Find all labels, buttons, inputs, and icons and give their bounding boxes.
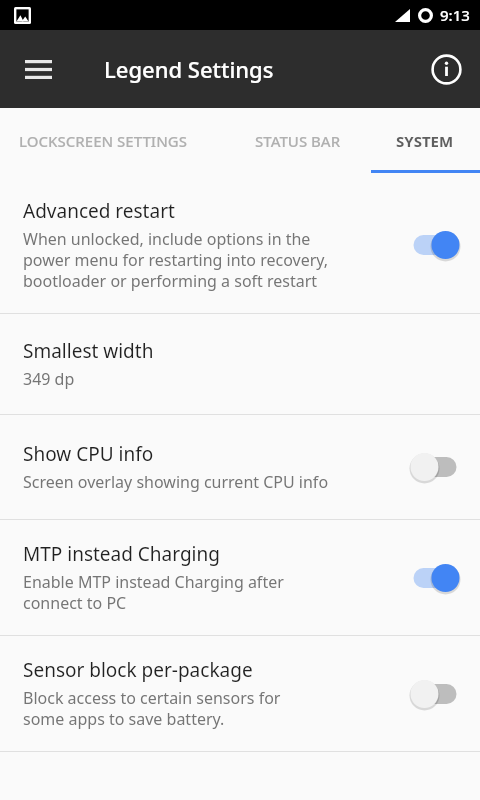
button[interactable]: Sensor block per-package	[404, 674, 466, 714]
staticText: Enable MTP instead Charging after connec…	[23, 571, 284, 614]
staticText: Screen overlay showing current CPU info	[23, 471, 329, 493]
button[interactable]: Advanced restart	[0, 176, 480, 313]
button[interactable]: Advanced restart	[404, 225, 466, 265]
staticText: Sensor block per-package	[23, 657, 253, 683]
staticText: Show CPU info	[23, 441, 154, 467]
staticText: LOCKSCREEN SETTINGS	[19, 131, 187, 151]
button[interactable]: Open navigation menu	[10, 41, 66, 97]
button[interactable]: Sensor block per-package	[0, 636, 480, 751]
staticText: 9:13	[440, 5, 470, 25]
staticText: MTP instead Charging	[23, 541, 220, 567]
button[interactable]: MTP instead Charging	[404, 558, 466, 598]
button[interactable]: Smallest width	[0, 314, 480, 414]
button[interactable]: MTP instead Charging	[0, 520, 480, 635]
staticText: Advanced restart	[23, 198, 175, 224]
button[interactable]: LOCKSCREEN SETTINGS	[0, 108, 215, 173]
staticText: 349 dp	[23, 368, 75, 390]
staticText: When unlocked, include options in the po…	[23, 228, 329, 292]
button[interactable]: Show CPU info	[404, 447, 466, 487]
button[interactable]: STATUS BAR	[228, 108, 368, 173]
button[interactable]: Show CPU info	[0, 415, 480, 519]
button[interactable]: About	[420, 43, 472, 95]
staticText: STATUS BAR	[255, 131, 341, 151]
staticText: Block access to certain sensors for some…	[23, 687, 281, 730]
button[interactable]: SYSTEM	[370, 108, 480, 173]
staticText: Legend Settings	[104, 54, 274, 84]
staticText: Smallest width	[23, 338, 154, 364]
staticText: SYSTEM	[396, 131, 454, 151]
